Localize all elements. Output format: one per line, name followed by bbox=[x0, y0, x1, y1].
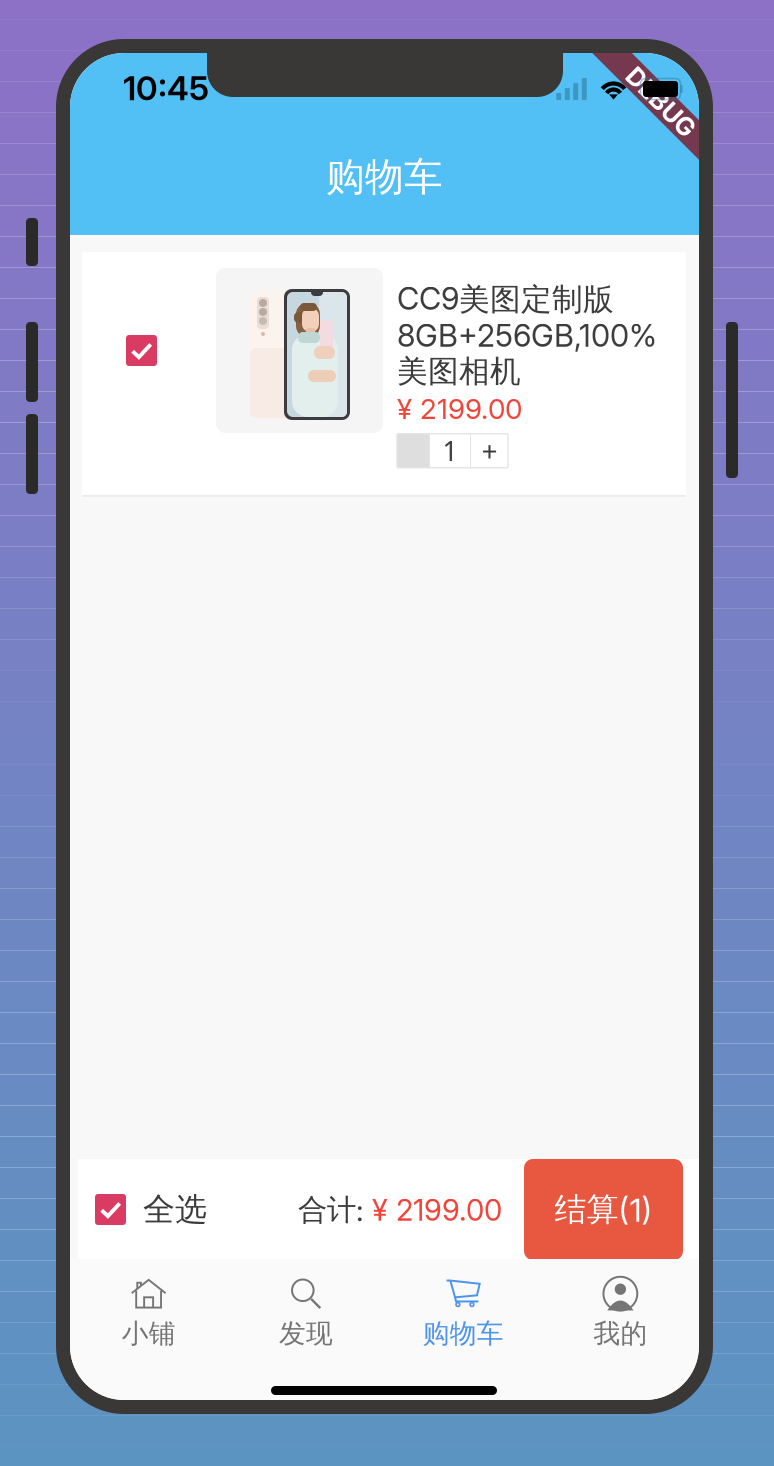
staticText: 小铺 bbox=[122, 1317, 176, 1350]
button[interactable]: 我的 bbox=[542, 1274, 699, 1352]
staticText: CC9美图定制版 8GB+256GB,100%美图相机 bbox=[397, 281, 657, 390]
button[interactable]: Select item bbox=[126, 335, 157, 366]
staticText: 1 bbox=[442, 433, 457, 468]
staticText: 我的 bbox=[593, 1317, 647, 1350]
staticText: 购物车 bbox=[423, 1317, 504, 1350]
staticText: 10:45 bbox=[123, 68, 209, 108]
button[interactable]: 全选 bbox=[95, 1193, 295, 1226]
staticText: + bbox=[481, 432, 497, 469]
staticText: DEBUG bbox=[617, 87, 704, 117]
button[interactable]: Increase quantity bbox=[471, 434, 508, 468]
staticText: 全选 bbox=[143, 1189, 207, 1230]
button[interactable]: 购物车 bbox=[384, 1274, 542, 1352]
staticText: ¥ 2199.00 bbox=[372, 1192, 502, 1228]
button[interactable]: 小铺 bbox=[70, 1274, 227, 1352]
staticText: 合计: bbox=[298, 1191, 372, 1228]
staticText: 购物车 bbox=[326, 153, 443, 201]
staticText: 结算(1) bbox=[554, 1189, 652, 1230]
staticText: 发现 bbox=[279, 1317, 333, 1350]
staticText: ¥ 2199.00 bbox=[397, 392, 522, 426]
button[interactable]: 结算(1) bbox=[524, 1159, 683, 1260]
button[interactable]: 发现 bbox=[227, 1274, 384, 1352]
